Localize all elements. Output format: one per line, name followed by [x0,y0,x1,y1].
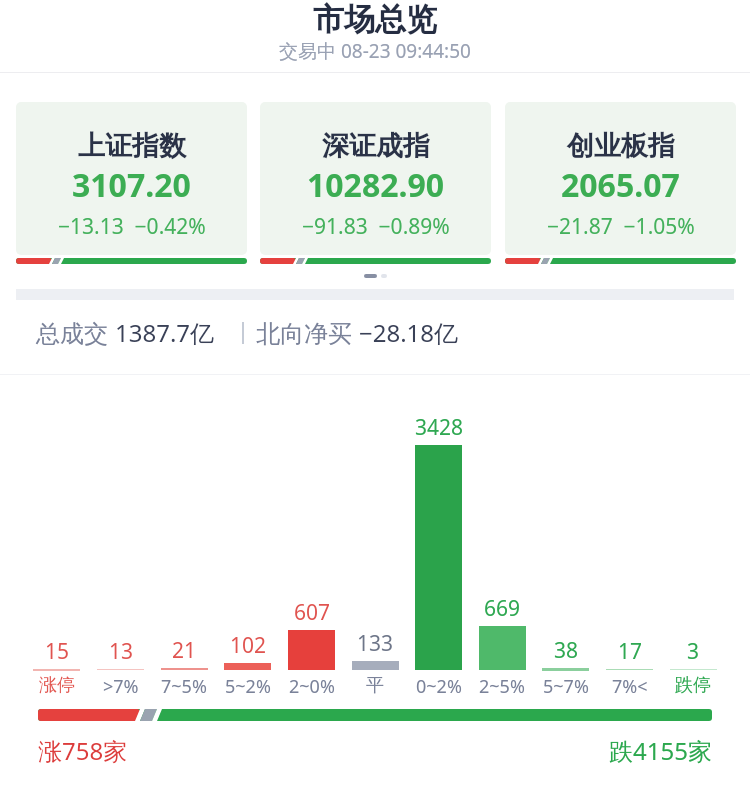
staticText: 涨758家 [38,734,128,767]
staticText: 21 [172,636,197,665]
button[interactable]: 涨758家 [38,734,128,767]
staticText: 2065.07 [561,163,680,207]
button[interactable]: 平 [343,674,407,697]
staticText: 3428 [415,413,464,442]
staticText: 5~2% [225,674,271,699]
staticText: 102 [230,631,267,660]
staticText: 1387.7亿 [115,316,215,349]
button[interactable]: 北向净买 [256,316,459,349]
staticText: 2~5% [479,674,525,699]
staticText: 3107.20 [72,163,191,207]
staticText: 607 [294,598,331,627]
staticText: 3 [687,637,700,666]
staticText: −13.13 −0.42% [58,212,206,241]
staticText: 5~7% [543,674,589,699]
button[interactable]: 2~5% [470,674,534,699]
button[interactable]: 总成交 [36,316,215,349]
button[interactable]: 2~0% [280,674,344,699]
staticText: 总成交 [36,316,115,349]
button[interactable]: 涨停 [25,674,89,697]
staticText: 平 [366,674,384,697]
staticText: 跌4155家 [609,734,712,767]
staticText: −91.83 −0.89% [302,212,450,241]
staticText: −21.87 −1.05% [547,212,695,241]
button[interactable]: 跌停 [661,674,725,697]
staticText: 涨停 [39,674,75,697]
staticText: 17 [618,637,643,666]
button[interactable]: 上证指数 [16,102,247,255]
staticText: 0~2% [416,674,462,699]
staticText: 交易中 08-23 09:44:50 [279,38,471,64]
button[interactable]: 创业板指 [505,102,736,255]
staticText: −28.18亿 [359,316,459,349]
staticText: 10282.90 [307,163,445,207]
staticText: >7% [103,674,139,699]
staticText: 13 [109,637,134,666]
staticText: 跌停 [675,674,711,697]
staticText: 133 [357,629,394,658]
button[interactable]: 5~2% [216,674,280,699]
staticText: 38 [554,636,579,665]
staticText: 市场总览 [313,0,437,39]
button[interactable]: 5~7% [534,674,598,699]
button[interactable]: 7%< [598,674,662,699]
staticText: 7~5% [161,674,207,699]
staticText: 669 [484,594,521,623]
button[interactable]: >7% [89,674,153,699]
staticText: 北向净买 [256,316,359,349]
button[interactable]: 0~2% [407,674,471,699]
button[interactable]: 7~5% [152,674,216,699]
staticText: 15 [45,637,70,666]
staticText: 深证成指 [322,129,430,163]
staticText: 2~0% [289,674,335,699]
staticText: 7%< [612,674,648,699]
staticText: 创业板指 [567,129,675,163]
staticText: 上证指数 [78,129,186,163]
button[interactable]: 深证成指 [260,102,491,255]
